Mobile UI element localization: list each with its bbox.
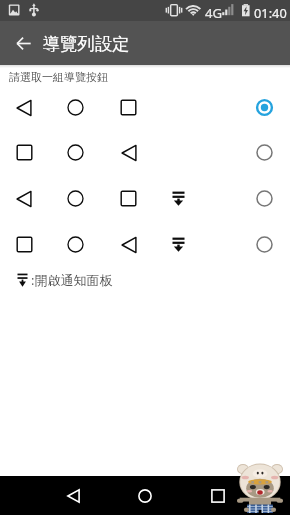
button[interactable]: Back xyxy=(49,476,97,515)
button[interactable] xyxy=(0,176,290,221)
button[interactable]: Recent apps xyxy=(194,476,242,515)
button[interactable] xyxy=(0,85,290,130)
staticText: 導覽列設定 xyxy=(43,33,130,55)
button[interactable] xyxy=(0,130,290,175)
staticText: 01:40 xyxy=(254,4,287,21)
staticText: 4G xyxy=(205,4,223,22)
staticText: 請選取一組導覽按鈕 xyxy=(9,70,108,84)
button[interactable] xyxy=(0,222,290,267)
button[interactable]: Home xyxy=(121,476,169,515)
staticText: :開啟通知面板 xyxy=(31,271,113,289)
button[interactable]: Back xyxy=(3,21,43,65)
